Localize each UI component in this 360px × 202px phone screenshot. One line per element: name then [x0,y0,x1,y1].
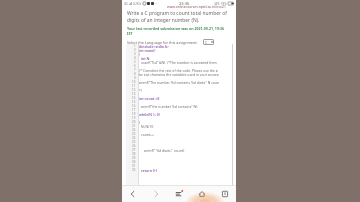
staticText: 13 [132,92,136,96]
staticText: 25 [132,140,136,144]
staticText: www.onlinecourses.nptel.ac.in/noc21 [167,4,226,8]
staticText: 0.2K/s [133,2,142,6]
staticText: ··· [155,2,158,6]
staticText: 19 [132,116,136,120]
staticText: 5 [134,60,136,64]
staticText: 20 [132,120,136,124]
staticText: 31 [132,164,136,168]
button[interactable]: Home [190,186,213,202]
staticText: 23 [132,132,136,136]
button[interactable]: Bookmarks [213,186,236,202]
staticText: 17 [132,108,136,112]
staticText: 11 [132,84,136,88]
staticText: 12 [132,88,136,92]
staticText: 4G [124,2,128,6]
staticText: return 0;} [141,168,157,172]
staticText: /* Complete the rest of the code. Please… [139,68,218,72]
staticText: 26 [132,144,136,148]
staticText: count++; [141,132,155,136]
staticText: #include<stdio.h> [139,44,170,48]
staticText: 7 [134,68,136,72]
staticText: printf("The number %d contains %d digits… [139,80,220,84]
staticText: 34% [214,2,220,6]
staticText: Your last recorded submission was on 202… [127,26,224,36]
button[interactable]: Back [122,186,144,202]
staticText: scanf("%d",&N); /*The number is accepted… [141,60,217,64]
staticText: 23:36 [179,1,190,6]
staticText: 24 [132,136,136,140]
staticText: 14 [132,96,136,100]
staticText: 32 [132,168,136,172]
staticText: int count =0; [139,96,161,100]
staticText: 8 [134,72,136,76]
staticText: { [139,52,141,56]
staticText: { [139,120,141,124]
staticText: Select the Language for this assignment: [127,40,198,45]
staticText: 9 [134,76,136,80]
staticText: int main() [139,48,156,52]
staticText: 21 [132,124,136,128]
button[interactable]: Tabs [167,186,190,202]
staticText: 28 [132,152,136,156]
staticText: 27 [132,148,136,152]
staticText: Write a C program to count total number … [127,10,227,23]
staticText: int N; [141,56,151,60]
staticText: 16 [132,104,136,108]
button[interactable]: Forward [144,186,167,202]
staticText: 3 [134,52,136,56]
staticText: 18 [132,112,136,116]
staticText: 18% [221,2,227,6]
staticText: printf(" %d digits.",count); [144,148,185,152]
staticText: printf("the number %d contains",N); [141,104,199,108]
staticText: 2 [134,48,136,52]
staticText: C [205,40,208,45]
staticText: while(N != 0) [139,112,160,116]
staticText: 6 [134,64,136,68]
staticText: by just changing the variables used in y… [139,72,219,76]
staticText: */ [139,88,143,92]
staticText: 15 [132,100,136,104]
staticText: 22 [132,128,136,132]
staticText: N=N/10; [141,124,155,128]
button[interactable]: C [203,39,214,45]
staticText: 4 [134,56,136,60]
staticText: 30 [132,160,136,164]
staticText: 1 [134,44,136,48]
staticText: 10 [132,80,136,84]
staticText: 29 [132,156,136,160]
